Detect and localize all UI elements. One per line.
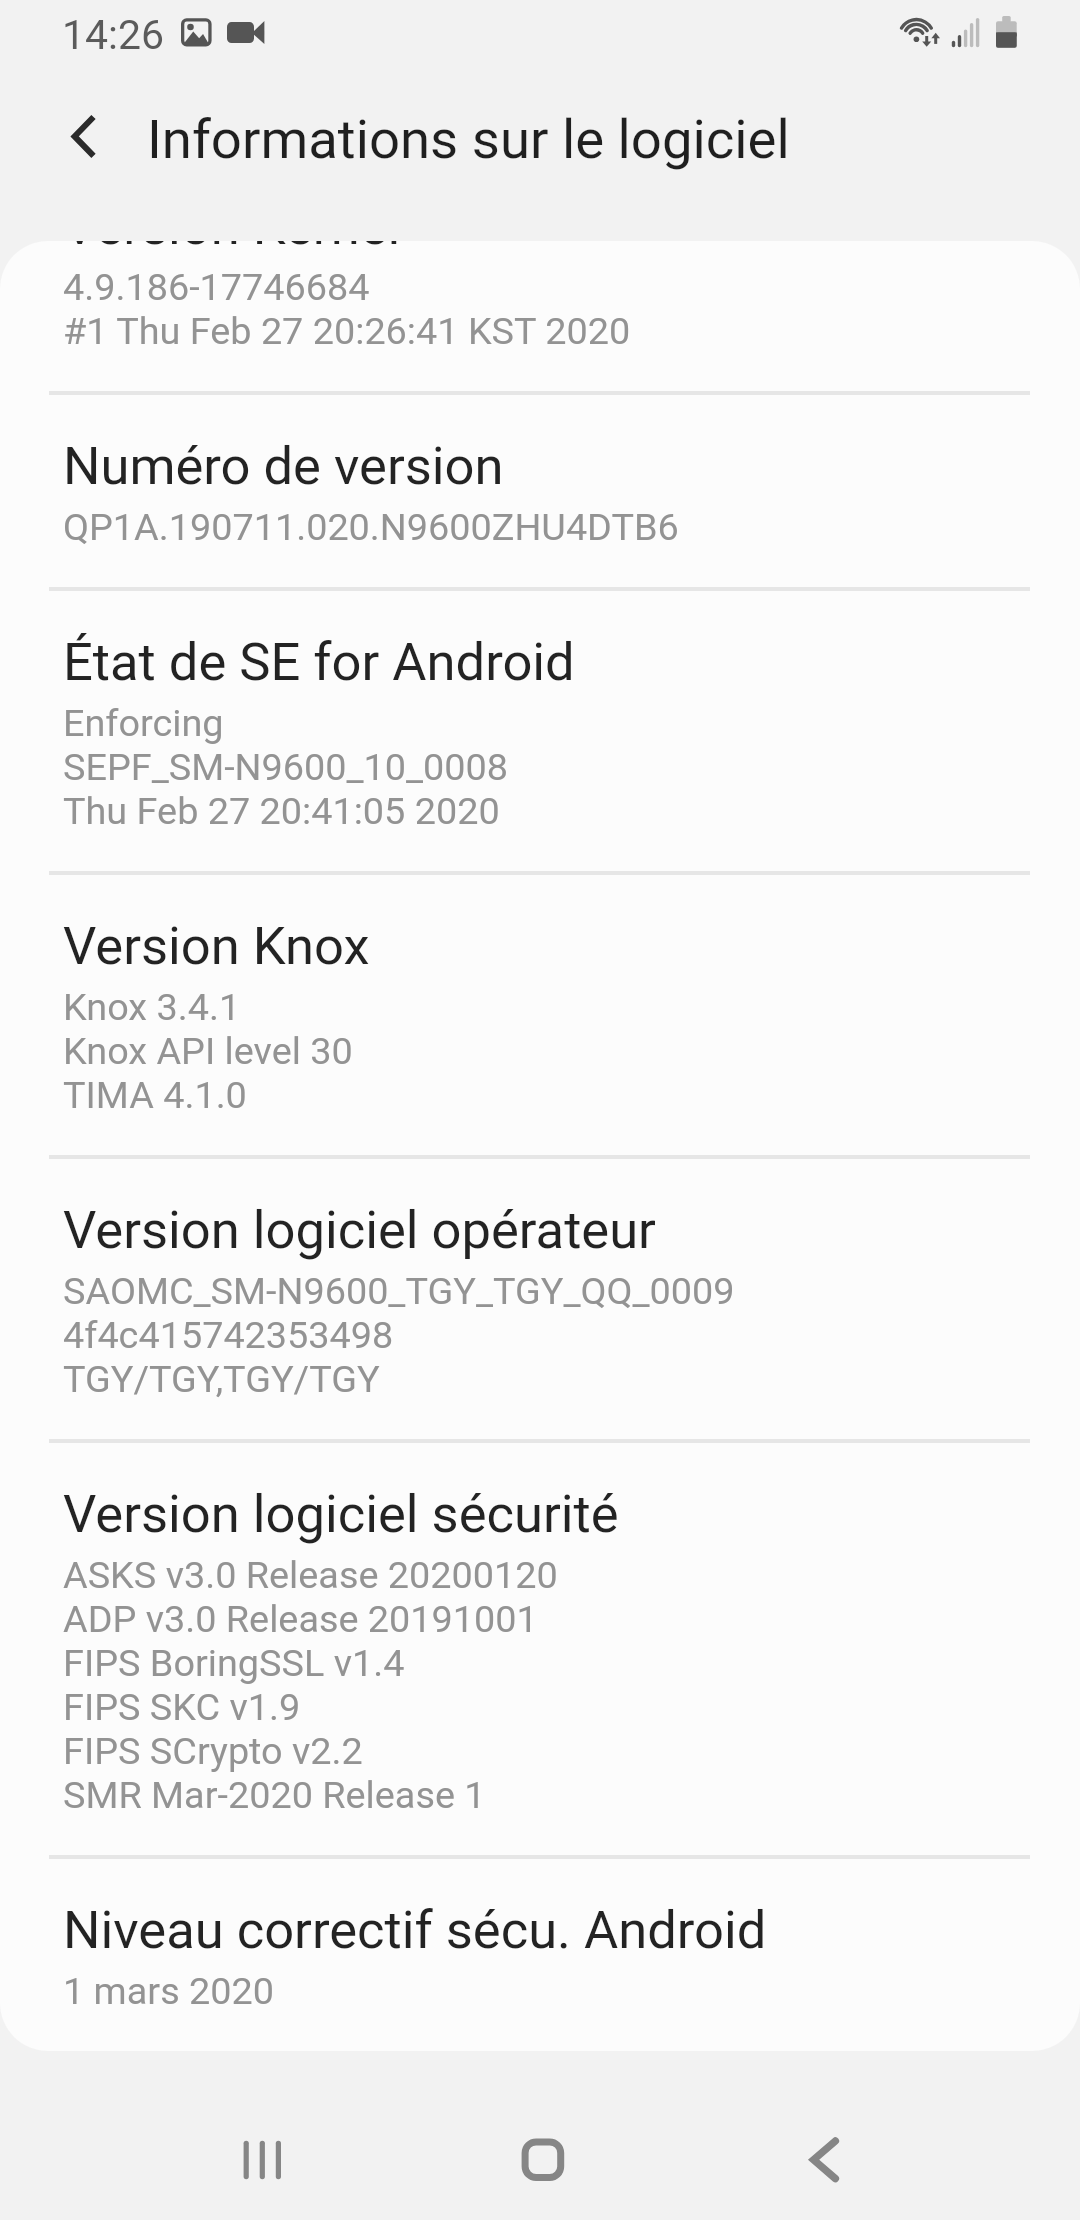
staticText: 4.9.186-17746684 [63, 265, 370, 309]
staticText: TGY/TGY,TGY/TGY [63, 1357, 380, 1401]
staticText: Version logiciel sécurité [63, 1483, 619, 1545]
staticText: #1 Thu Feb 27 20:26:41 KST 2020 [63, 309, 631, 353]
staticText: SMR Mar-2020 Release 1 [63, 1773, 486, 1817]
staticText: Thu Feb 27 20:41:05 2020 [63, 789, 500, 833]
staticText: ASKS v3.0 Release 20200120 [63, 1553, 558, 1597]
button[interactable]: État de SE for Android [0, 591, 1080, 871]
staticText: 1 mars 2020 [63, 1969, 274, 2005]
staticText: Numéro de version [63, 435, 504, 497]
staticText: Niveau correctif sécu. Android [63, 1899, 767, 1961]
staticText: SAOMC_SM-N9600_TGY_TGY_QQ_0009 [63, 1269, 735, 1313]
staticText: Knox API level 30 [63, 1029, 353, 1073]
staticText: Enforcing [63, 701, 224, 745]
staticText: ADP v3.0 Release 20191001 [63, 1597, 538, 1641]
button[interactable]: Version logiciel sécurité [0, 1443, 1080, 1855]
staticText: Version Knox [63, 915, 370, 977]
staticText: QP1A.190711.020.N9600ZHU4DTB6 [63, 505, 679, 549]
staticText: TIMA 4.1.0 [63, 1073, 247, 1117]
staticText: SEPF_SM-N9600_10_0008 [63, 745, 509, 789]
staticText: État de SE for Android [63, 631, 575, 693]
staticText: 4f4c415742353498 [63, 1313, 394, 1357]
button[interactable]: Version Kernel [0, 241, 1080, 391]
button[interactable]: Accueil [360, 2052, 720, 2220]
button[interactable]: Retour [28, 82, 138, 192]
staticText: 14:26 [62, 11, 165, 59]
button[interactable]: Retour [720, 2052, 1080, 2220]
button[interactable]: Version Knox [0, 875, 1080, 1155]
button[interactable]: Niveau correctif sécu. Android [0, 1859, 1080, 1965]
button[interactable]: Version logiciel opérateur [0, 1159, 1080, 1439]
staticText: Version Kernel [63, 241, 401, 257]
staticText: FIPS SKC v1.9 [63, 1685, 301, 1729]
staticText: Version logiciel opérateur [63, 1199, 656, 1261]
staticText: FIPS BoringSSL v1.4 [63, 1641, 405, 1685]
button[interactable]: Récents [0, 2052, 360, 2220]
staticText: Informations sur le logiciel [147, 107, 790, 171]
staticText: FIPS SCrypto v2.2 [63, 1729, 363, 1773]
button[interactable]: Numéro de version [0, 395, 1080, 587]
staticText: Knox 3.4.1 [63, 985, 241, 1029]
